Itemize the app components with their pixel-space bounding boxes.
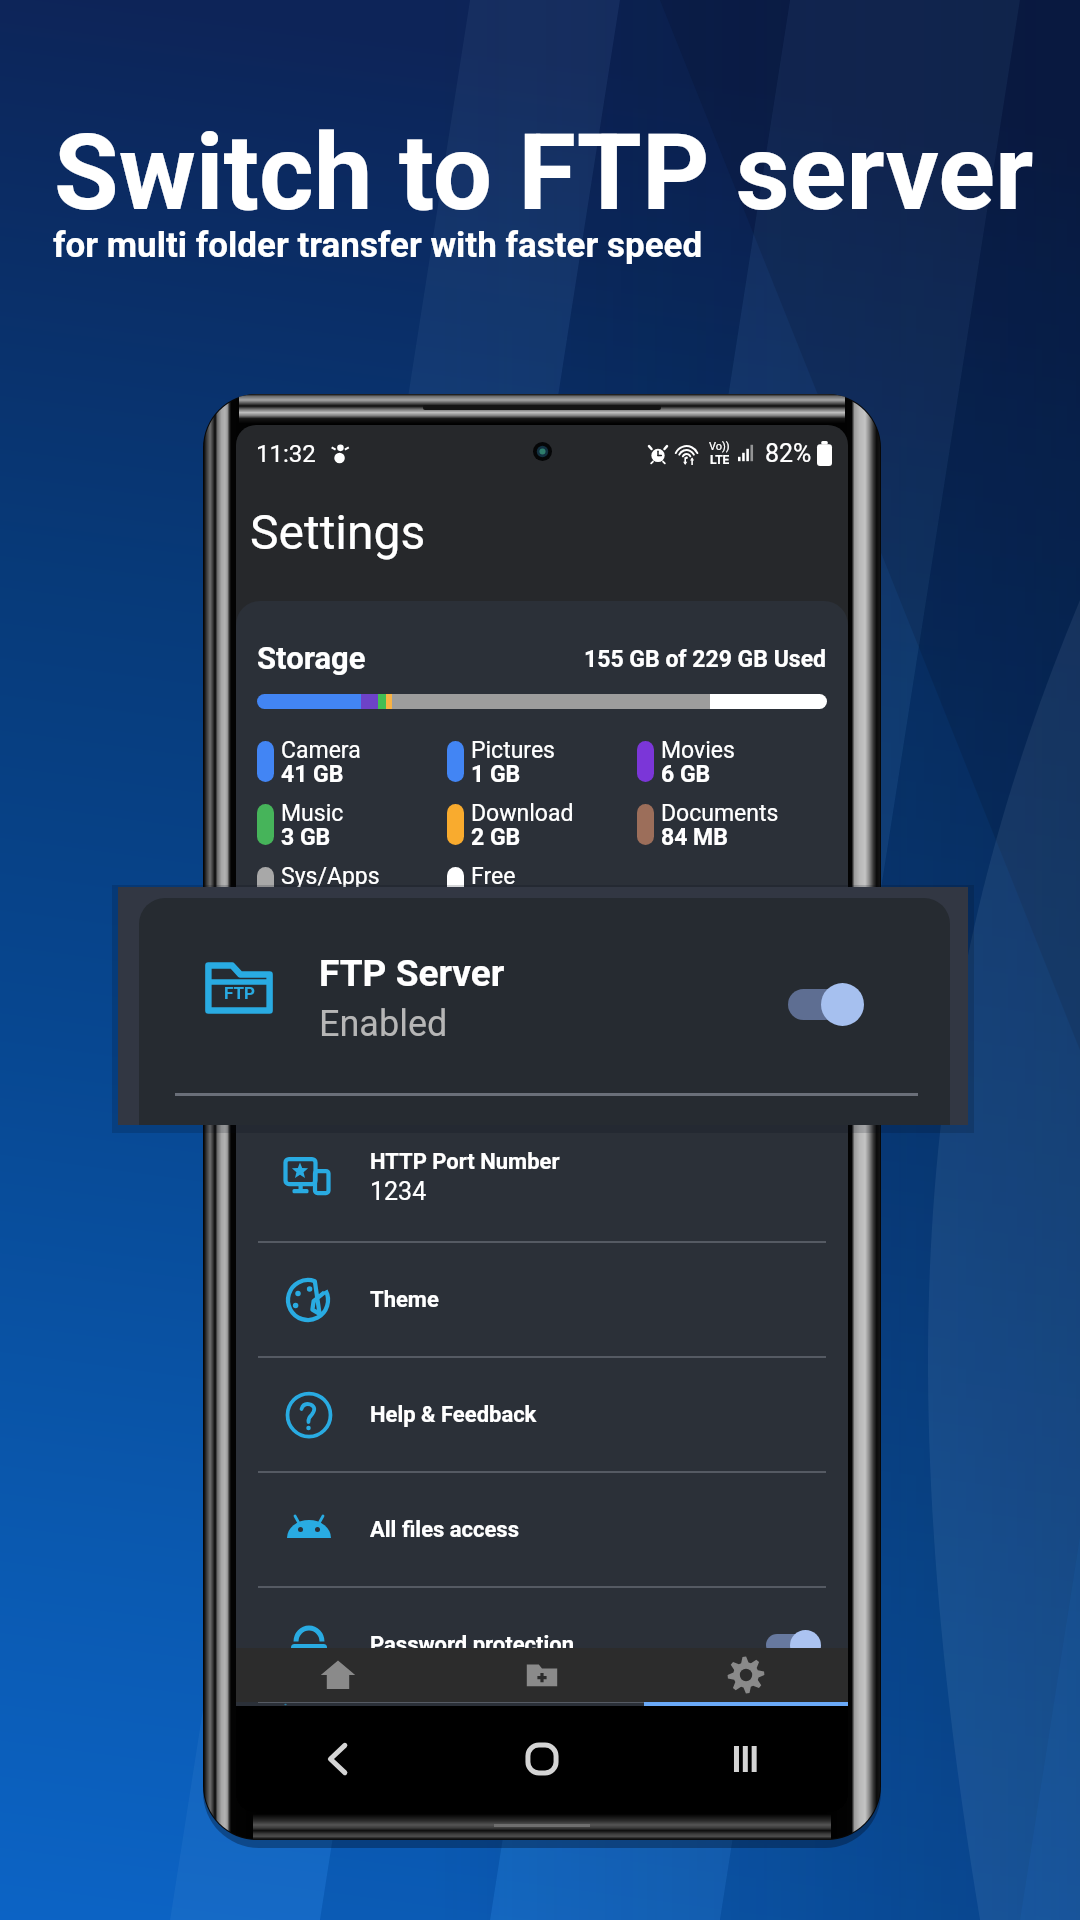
staticText: LTE <box>710 453 730 467</box>
staticText: Switch to FTP server <box>54 112 1034 235</box>
button[interactable]: Help & Feedback <box>236 1358 848 1473</box>
staticText: Documents <box>661 800 779 827</box>
staticText: 84 MB <box>661 824 728 851</box>
button[interactable]: Settings <box>644 1648 848 1702</box>
staticText: Camera <box>281 737 361 764</box>
staticText: Download <box>471 800 574 827</box>
staticText: 1 GB <box>471 761 521 788</box>
staticText: 11:32 <box>256 440 316 468</box>
staticText: for multi folder transfer with faster sp… <box>53 225 703 266</box>
button[interactable]: Home <box>236 1648 440 1702</box>
staticText: 6 GB <box>661 761 711 788</box>
button[interactable]: Home <box>440 1706 644 1812</box>
staticText: Help & Feedback <box>370 1402 537 1428</box>
staticText: Password protection <box>370 1632 575 1658</box>
button[interactable]: Back <box>236 1706 440 1812</box>
staticText: 1234 <box>370 1177 427 1206</box>
staticText: 82% <box>765 439 812 468</box>
staticText: Movies <box>661 737 735 764</box>
staticText: Enabled <box>319 1003 448 1045</box>
staticText: Music <box>281 800 344 827</box>
button[interactable]: New folder <box>440 1648 644 1702</box>
staticText: 74 GB <box>471 887 534 914</box>
staticText: Vo)) <box>709 440 730 453</box>
staticText: FTP <box>224 983 255 1003</box>
staticText: Theme <box>370 1287 439 1313</box>
staticText: All files access <box>370 1517 519 1543</box>
staticText: 45 GB <box>281 887 344 914</box>
button[interactable]: FTP <box>139 898 950 1125</box>
staticText: Pictures <box>471 737 555 764</box>
staticText: 155 GB of 229 GB Used <box>584 646 827 673</box>
button[interactable]: Hide media files <box>236 1703 848 1706</box>
staticText: Settings <box>250 504 426 560</box>
staticText: Storage <box>257 640 366 676</box>
button[interactable]: Password protection <box>236 1588 848 1703</box>
staticText: FTP Server <box>319 952 505 995</box>
staticText: HTTP Port Number <box>370 1149 560 1175</box>
staticText: Free <box>471 863 516 890</box>
staticText: 3 GB <box>281 824 331 851</box>
staticText: 2 GB <box>471 824 521 851</box>
staticText: 41 GB <box>281 761 344 788</box>
button[interactable]: Recents <box>644 1706 848 1812</box>
staticText: Sys/Apps <box>281 863 380 890</box>
button[interactable]: Theme <box>236 1243 848 1358</box>
button[interactable]: All files access <box>236 1473 848 1588</box>
button[interactable]: HTTP Port Number <box>236 1114 848 1243</box>
